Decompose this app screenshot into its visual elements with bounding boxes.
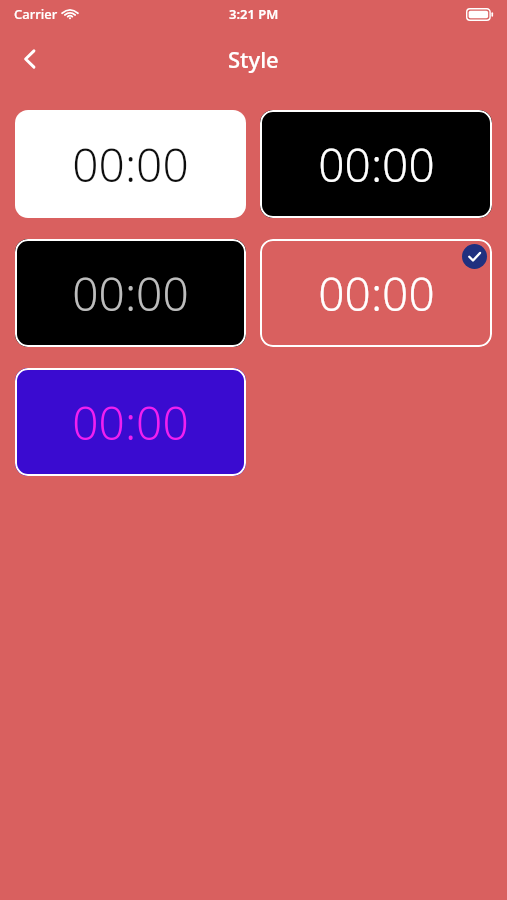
button[interactable]: 00:00 — [260, 239, 492, 347]
button[interactable]: 00:00 — [15, 239, 246, 347]
button[interactable]: 00:00 — [15, 110, 246, 218]
button[interactable]: 00:00 — [15, 368, 246, 476]
button[interactable]: Back — [6, 35, 54, 83]
staticText: 00:00 — [318, 133, 435, 196]
staticText: 00:00 — [72, 391, 189, 454]
staticText: 3:21 PM — [229, 5, 279, 23]
staticText: Style — [228, 44, 279, 74]
staticText: 00:00 — [72, 133, 189, 196]
staticText: 00:00 — [72, 262, 189, 325]
button[interactable]: 00:00 — [260, 110, 492, 218]
staticText: 00:00 — [318, 262, 435, 325]
staticText: Carrier — [14, 5, 58, 23]
